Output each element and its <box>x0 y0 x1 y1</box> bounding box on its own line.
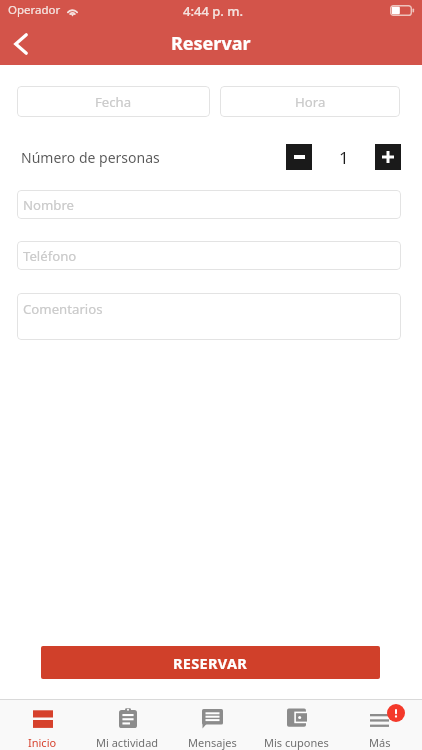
button[interactable]: Decrease <box>286 144 312 170</box>
button[interactable]: Mensajes <box>170 699 254 750</box>
button[interactable]: Hora <box>220 86 400 117</box>
staticText: Reservar <box>171 31 251 56</box>
button[interactable]: Más <box>338 699 422 750</box>
staticText: Mi actividad <box>96 735 159 750</box>
staticText: 4:44 p. m. <box>183 2 244 20</box>
staticText: Inicio <box>28 735 57 750</box>
button[interactable]: Fecha <box>17 86 210 117</box>
staticText: Hora <box>295 93 326 111</box>
staticText: Teléfono <box>23 247 77 265</box>
button[interactable]: Inicio <box>0 699 85 750</box>
staticText: Comentarios <box>23 300 103 318</box>
staticText: Mensajes <box>188 735 237 750</box>
button[interactable]: Mis cupones <box>254 699 338 750</box>
staticText: Mis cupones <box>264 735 329 750</box>
staticText: Número de personas <box>21 148 160 167</box>
staticText: Más <box>369 735 391 750</box>
button[interactable]: Nombre <box>17 190 401 219</box>
staticText: RESERVAR <box>173 653 248 673</box>
button[interactable]: RESERVAR <box>41 646 380 679</box>
button[interactable]: Comentarios <box>17 293 401 340</box>
button[interactable]: Mi actividad <box>85 699 170 750</box>
staticText: 1 <box>339 146 349 169</box>
staticText: Operador <box>8 2 61 18</box>
button[interactable]: Teléfono <box>17 241 401 270</box>
button[interactable]: Increase <box>375 144 401 170</box>
staticText: Nombre <box>23 196 75 214</box>
staticText: Fecha <box>95 93 132 111</box>
button[interactable]: Back <box>0 21 44 65</box>
